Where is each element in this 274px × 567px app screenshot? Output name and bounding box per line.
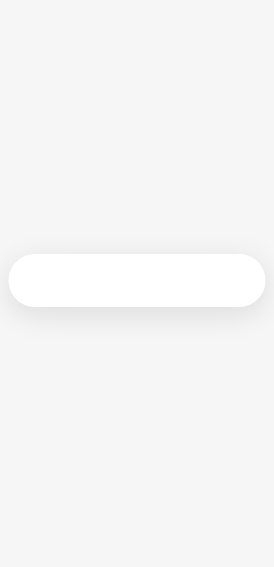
button[interactable]: Search — [8, 254, 265, 307]
